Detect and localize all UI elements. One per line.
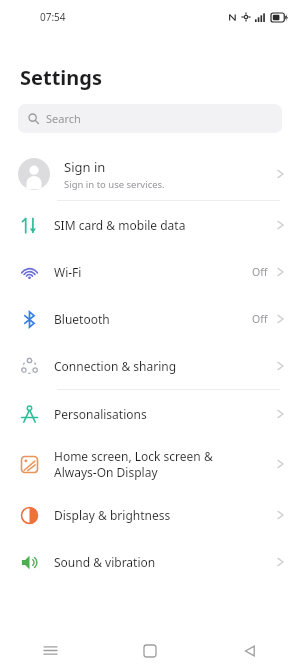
button[interactable]: Back [200,634,300,667]
button[interactable]: Connection & sharing [0,342,300,389]
staticText: SIM card & mobile data [54,217,277,233]
staticText: Bluetooth [54,311,252,327]
staticText: Connection & sharing [54,358,277,374]
staticText: Sound & vibration [54,554,277,570]
staticText: Wi-Fi [54,264,252,280]
staticText: Search [46,111,81,126]
button[interactable]: SIM card & mobile data [0,201,300,248]
staticText: Sign in [64,158,106,176]
staticText: Home screen, Lock screen & Always-On Dis… [54,448,277,480]
button[interactable]: Sound & vibration [0,538,300,585]
button[interactable]: Search [18,104,282,133]
staticText: Sign in to use services. [64,178,165,191]
button[interactable]: Sign in [0,148,300,200]
button[interactable]: Display & brightness [0,491,300,538]
staticText: Off [252,265,268,279]
button[interactable]: Wi-Fi [0,248,300,295]
staticText: Off [252,312,268,326]
button[interactable]: Recent apps [0,634,100,667]
button[interactable]: Bluetooth [0,295,300,342]
staticText: Settings [20,64,102,91]
button[interactable]: Home [100,634,200,667]
button[interactable]: Personalisations [0,390,300,437]
button[interactable]: Home screen, Lock screen & Always-On Dis… [0,437,300,491]
staticText: Display & brightness [54,507,277,523]
staticText: Personalisations [54,406,277,422]
staticText: 07:54 [40,10,66,24]
